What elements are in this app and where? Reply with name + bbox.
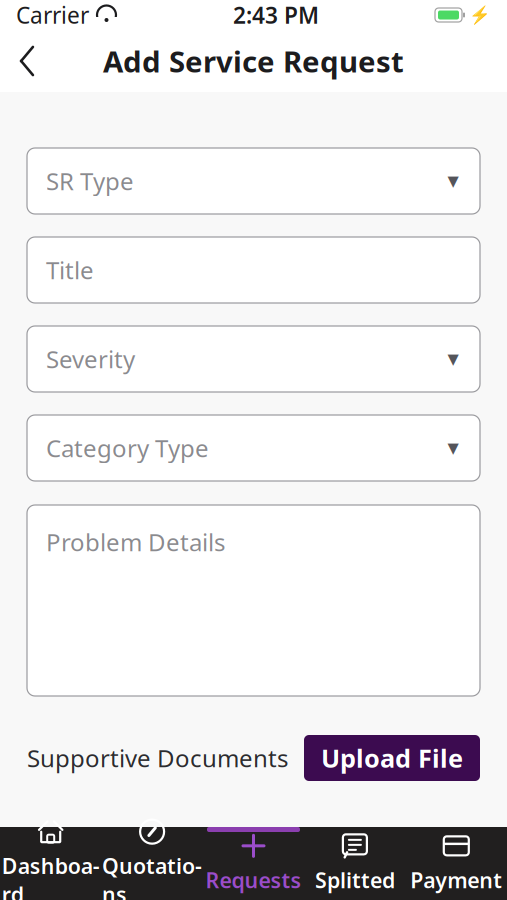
staticText: SR Type <box>46 165 134 197</box>
staticText: Carrier <box>16 0 89 30</box>
staticText: ▼ <box>447 173 458 189</box>
staticText: Quotations <box>102 852 202 900</box>
button[interactable]: Payment <box>406 827 507 900</box>
staticText: Requests <box>205 866 301 894</box>
button[interactable]: Back <box>0 32 54 90</box>
staticText: Add Service Request <box>103 41 404 80</box>
staticText: ▼ <box>447 440 458 456</box>
button[interactable]: Severity <box>27 326 480 392</box>
staticText: Dashboard <box>2 852 100 900</box>
button[interactable]: Category Type <box>27 415 480 481</box>
staticText: Severity <box>46 343 135 375</box>
button[interactable]: Dashboard <box>0 827 101 900</box>
staticText: Title <box>46 254 94 286</box>
staticText: Upload File <box>321 741 463 775</box>
staticText: ▼ <box>447 351 458 367</box>
staticText: Supportive Documents <box>27 742 288 774</box>
button[interactable]: SR Type <box>27 148 480 214</box>
button[interactable]: Quotations <box>101 827 203 900</box>
staticText: Category Type <box>46 432 209 464</box>
staticText: 2:43 PM <box>233 0 319 30</box>
staticText: Problem Details <box>46 526 225 558</box>
button[interactable]: Title <box>27 237 480 303</box>
button[interactable]: Problem Details <box>27 505 480 696</box>
button[interactable]: Requests <box>203 827 304 900</box>
staticText: Splitted <box>315 866 395 894</box>
staticText: Payment <box>410 866 502 894</box>
button[interactable]: Splitted <box>304 827 406 900</box>
button[interactable]: Upload File <box>304 735 480 781</box>
staticText: ⚡ <box>469 5 491 25</box>
